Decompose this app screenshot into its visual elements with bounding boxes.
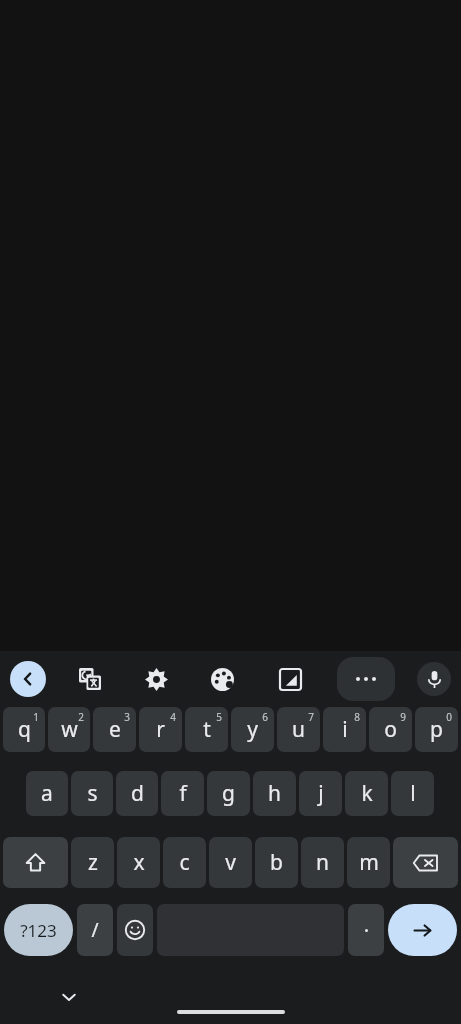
button[interactable]: More options [337, 657, 395, 701]
staticText: 9 [400, 710, 406, 724]
staticText: 5 [216, 710, 222, 724]
button[interactable]: u [277, 707, 320, 752]
button[interactable]: Themes [202, 659, 242, 699]
button[interactable]: n [301, 837, 344, 888]
button[interactable]: / [77, 904, 113, 956]
staticText: w [61, 715, 78, 744]
button[interactable]: d [116, 771, 158, 816]
staticText: v [225, 848, 236, 877]
staticText: e [109, 715, 121, 744]
staticText: 1 [33, 710, 39, 724]
staticText: z [88, 848, 98, 877]
button[interactable]: p [415, 707, 458, 752]
staticText: g [222, 779, 235, 808]
staticText: t [203, 715, 211, 744]
staticText: y [247, 715, 258, 744]
button[interactable]: c [163, 837, 206, 888]
button[interactable]: r [139, 707, 182, 752]
staticText: u [292, 715, 305, 744]
button[interactable]: Hide keyboard [50, 978, 88, 1016]
button[interactable]: b [255, 837, 298, 888]
staticText: f [179, 779, 187, 808]
staticText: r [156, 715, 165, 744]
staticText: m [359, 848, 379, 877]
button[interactable]: Voice input [417, 662, 451, 696]
button[interactable]: Resize keyboard [270, 659, 310, 699]
button[interactable]: h [253, 771, 296, 816]
staticText: o [384, 715, 397, 744]
button[interactable]: a [26, 771, 68, 816]
button[interactable]: Shift [3, 837, 68, 888]
staticText: i [342, 715, 348, 744]
button[interactable]: ?123 [4, 904, 73, 956]
staticText: c [179, 848, 190, 877]
staticText: j [318, 779, 324, 808]
button[interactable]: q [3, 707, 45, 752]
staticText: 8 [354, 710, 360, 724]
staticText: n [316, 848, 329, 877]
button[interactable]: v [209, 837, 252, 888]
staticText: x [133, 848, 145, 877]
button[interactable]: Translate [70, 659, 110, 699]
staticText: 7 [308, 710, 314, 724]
button[interactable]: Backspace [393, 837, 458, 888]
button[interactable]: Settings [136, 659, 176, 699]
button[interactable]: g [207, 771, 250, 816]
button[interactable]: y [231, 707, 274, 752]
staticText: q [18, 715, 31, 744]
button[interactable]: j [299, 771, 342, 816]
staticText: 4 [170, 710, 176, 724]
staticText: 6 [262, 710, 268, 724]
button[interactable]: Enter [388, 904, 457, 956]
button[interactable]: x [117, 837, 160, 888]
button[interactable] [348, 904, 384, 956]
staticText: b [270, 848, 283, 877]
button[interactable]: Back [10, 661, 46, 697]
staticText: 2 [78, 710, 84, 724]
button[interactable]: o [369, 707, 412, 752]
button[interactable]: s [71, 771, 113, 816]
button[interactable]: i [323, 707, 366, 752]
staticText: k [361, 779, 373, 808]
staticText: h [268, 779, 281, 808]
button[interactable]: w [48, 707, 90, 752]
button[interactable]: k [345, 771, 388, 816]
button[interactable]: e [93, 707, 136, 752]
staticText: a [41, 779, 53, 808]
staticText: 3 [124, 710, 130, 724]
staticText: s [87, 779, 98, 808]
button[interactable]: t [185, 707, 228, 752]
button[interactable]: m [347, 837, 390, 888]
staticText: d [131, 779, 144, 808]
button[interactable]: Emoji [117, 904, 153, 956]
button[interactable]: l [391, 771, 434, 816]
staticText: l [410, 779, 416, 808]
staticText: p [430, 715, 443, 744]
staticText: ?123 [20, 919, 57, 942]
button[interactable]: z [71, 837, 114, 888]
staticText: 0 [446, 710, 452, 724]
button[interactable]: f [161, 771, 204, 816]
staticText: / [91, 917, 99, 943]
